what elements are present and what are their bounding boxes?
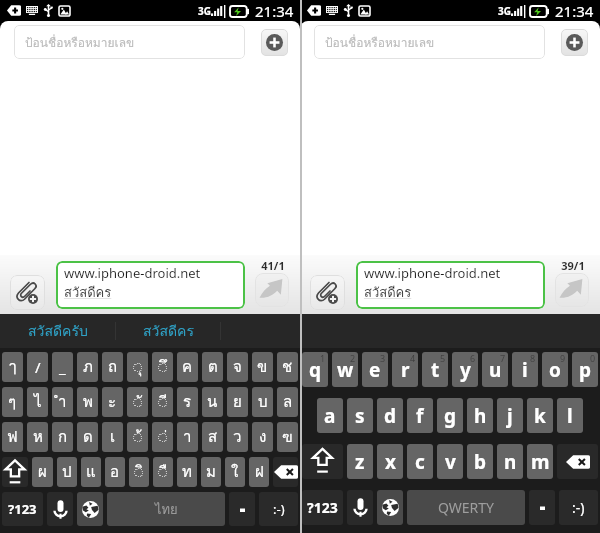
button[interactable]: ไ [27, 387, 48, 417]
button[interactable]: ไทย [107, 492, 225, 526]
button[interactable]: w [332, 352, 358, 387]
button[interactable]: e [362, 352, 388, 387]
button[interactable]: ค [177, 352, 198, 382]
button[interactable]: ก [52, 422, 73, 452]
button[interactable]: เ [102, 422, 123, 452]
button[interactable]: บ [252, 387, 273, 417]
button[interactable]: ๅ [2, 352, 23, 382]
button[interactable]: ง [252, 422, 273, 452]
button[interactable]: l [557, 398, 583, 433]
button[interactable]: Add recipient [561, 29, 588, 56]
button[interactable]: v [437, 444, 463, 479]
button[interactable]: ?123 [2, 492, 43, 526]
button[interactable]: Change language [77, 492, 103, 526]
button[interactable]: ร [177, 387, 198, 417]
button[interactable]: ช [277, 352, 298, 382]
button[interactable]: t [422, 352, 448, 387]
button[interactable]: ส [202, 422, 223, 452]
button[interactable]: Delete [273, 457, 298, 487]
button[interactable]: :-) [259, 492, 298, 526]
button[interactable]: ◌ึ [152, 352, 173, 382]
button[interactable]: Shift [302, 444, 343, 479]
button[interactable]: ด [77, 422, 98, 452]
button[interactable]: p [572, 352, 598, 387]
button[interactable]: QWERTY [407, 490, 525, 525]
button[interactable]: Shift [2, 457, 28, 487]
button[interactable]: ป้อนชื่อหรือหมายเลข [14, 25, 245, 59]
button[interactable]: ◌ิ [129, 457, 149, 487]
button[interactable]: Send [555, 273, 589, 307]
button[interactable]: ใ [225, 457, 245, 487]
button[interactable]: Add recipient [261, 29, 288, 56]
button[interactable]: Send [255, 273, 289, 307]
button[interactable]: ว [227, 422, 248, 452]
button[interactable]: _ [52, 352, 73, 382]
button[interactable]: :-) [559, 490, 598, 525]
button[interactable]: q [302, 352, 328, 387]
button[interactable]: d [377, 398, 403, 433]
button[interactable]: ๆ [2, 387, 23, 417]
button[interactable]: www.iphone-droid.net [56, 261, 245, 309]
button[interactable]: ฟ [2, 422, 23, 452]
button[interactable]: k [527, 398, 553, 433]
button[interactable]: ห [27, 422, 48, 452]
button[interactable]: h [467, 398, 493, 433]
button[interactable]: า [177, 422, 198, 452]
button[interactable]: m [527, 444, 553, 479]
button[interactable]: o [542, 352, 568, 387]
button[interactable]: ป [57, 457, 77, 487]
button[interactable]: a [317, 398, 343, 433]
button[interactable]: n [497, 444, 523, 479]
button[interactable]: Voice input [47, 492, 73, 526]
button[interactable]: z [347, 444, 373, 479]
button[interactable]: b [467, 444, 493, 479]
button[interactable]: / [27, 352, 48, 382]
button[interactable]: ◌่ [152, 422, 173, 452]
button[interactable]: g [437, 398, 463, 433]
button[interactable]: i [512, 352, 538, 387]
button[interactable]: Attach [310, 275, 345, 310]
button[interactable]: Attach [10, 275, 45, 310]
button[interactable]: ะ [102, 387, 123, 417]
button[interactable]: Voice input [347, 490, 373, 525]
button[interactable]: จ [227, 352, 248, 382]
button[interactable]: ล [277, 387, 298, 417]
button[interactable]: Period [529, 490, 555, 525]
button[interactable]: น [202, 387, 223, 417]
button[interactable]: ท [177, 457, 197, 487]
button[interactable]: y [452, 352, 478, 387]
button[interactable]: Period [229, 492, 255, 526]
button[interactable]: พ [77, 387, 98, 417]
button[interactable]: x [377, 444, 403, 479]
button[interactable]: ำ [52, 387, 73, 417]
button[interactable]: ภ [77, 352, 98, 382]
button[interactable]: f [407, 398, 433, 433]
button[interactable]: ผ [32, 457, 53, 487]
button[interactable]: ย [227, 387, 248, 417]
button[interactable]: ◌ื [153, 457, 173, 487]
button[interactable]: แ [81, 457, 101, 487]
button[interactable]: r [392, 352, 418, 387]
button[interactable]: ต [202, 352, 223, 382]
button[interactable]: สวัสดีครับ [0, 314, 115, 348]
button[interactable]: ◌ี [152, 387, 173, 417]
button[interactable]: Delete [557, 444, 598, 479]
button[interactable]: u [482, 352, 508, 387]
button[interactable]: ◌ุ [127, 352, 148, 382]
button[interactable]: ถ [102, 352, 123, 382]
button[interactable]: j [497, 398, 523, 433]
button[interactable]: ป้อนชื่อหรือหมายเลข [314, 25, 545, 59]
button[interactable]: s [347, 398, 373, 433]
button[interactable]: ฃ [277, 422, 298, 452]
button[interactable]: ฝ [249, 457, 269, 487]
button[interactable]: ข [252, 352, 273, 382]
button[interactable]: อ [105, 457, 125, 487]
button[interactable]: c [407, 444, 433, 479]
button[interactable]: ม [201, 457, 221, 487]
button[interactable]: www.iphone-droid.net [356, 261, 545, 309]
button[interactable]: ◌้ [127, 422, 148, 452]
button[interactable]: ◌ั [127, 387, 148, 417]
button[interactable]: สวัสดีคร [116, 314, 220, 348]
button[interactable]: ?123 [302, 490, 343, 525]
button[interactable]: Change language [377, 490, 403, 525]
